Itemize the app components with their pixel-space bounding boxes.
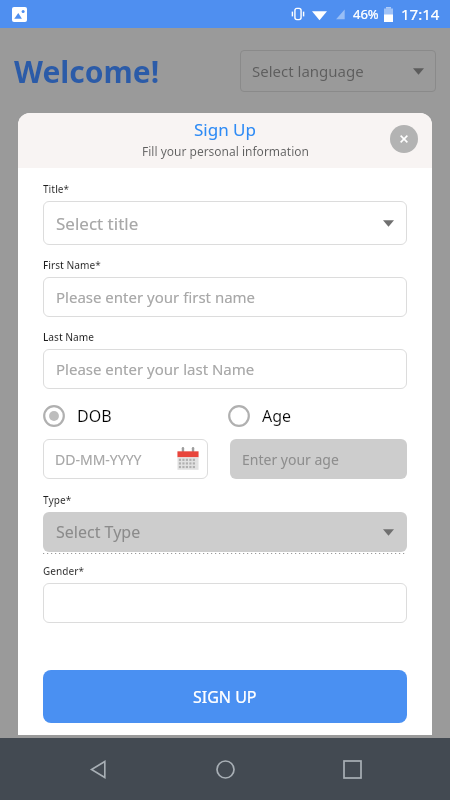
staticText: Welcome!	[14, 51, 160, 92]
staticText: DD-MM-YYYY	[55, 450, 142, 469]
staticText: First Name*	[43, 258, 101, 272]
staticText: Fill your personal information	[142, 143, 309, 159]
staticText: Last Name	[43, 330, 95, 344]
staticText: Title*	[43, 182, 70, 196]
button[interactable]: Select title	[43, 201, 407, 245]
button[interactable]: Select Type	[43, 512, 407, 552]
button[interactable]: DD-MM-YYYY	[43, 439, 208, 479]
button[interactable]: Please enter your first name	[43, 277, 407, 317]
staticText: Please enter your last Name	[56, 359, 255, 379]
staticText: SIGN UP	[193, 686, 257, 708]
staticText: 46%	[353, 5, 379, 23]
button[interactable]: Enter your age	[230, 439, 407, 479]
staticText: Select language	[252, 61, 364, 81]
button[interactable]: SIGN UP	[43, 670, 407, 723]
button[interactable]: Home	[197, 741, 253, 797]
button[interactable]: Back	[71, 741, 127, 797]
button[interactable]: DOB	[43, 405, 228, 427]
staticText: 17:14	[401, 4, 440, 24]
staticText: Gender*	[43, 564, 84, 578]
staticText: Age	[262, 405, 292, 427]
button[interactable]: Select language	[240, 50, 436, 92]
staticText: Sign Up	[194, 118, 256, 141]
button[interactable]: Recent apps	[324, 741, 380, 797]
staticText: Select title	[56, 212, 139, 235]
staticText: Type*	[43, 493, 72, 507]
staticText: Please enter your first name	[56, 287, 256, 307]
button[interactable]: Please enter your last Name	[43, 349, 407, 389]
button[interactable]	[43, 583, 407, 623]
staticText: Select Type	[56, 521, 141, 543]
button[interactable]: Close	[390, 125, 418, 153]
staticText: DOB	[77, 405, 112, 427]
button[interactable]: Age	[228, 405, 407, 427]
staticText: Enter your age	[242, 450, 339, 469]
